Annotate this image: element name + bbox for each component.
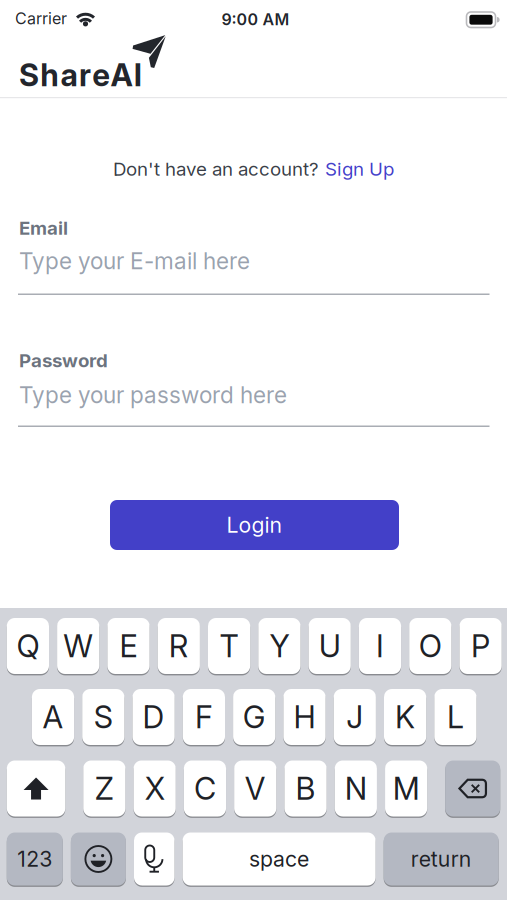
staticText: P bbox=[471, 628, 490, 664]
staticText: C bbox=[194, 770, 216, 807]
staticText: T bbox=[220, 628, 239, 664]
button[interactable]: Sign Up bbox=[325, 158, 394, 180]
button[interactable]: I bbox=[359, 618, 401, 674]
staticText: F bbox=[195, 699, 213, 735]
button[interactable]: A bbox=[32, 689, 74, 745]
staticText: D bbox=[143, 699, 165, 735]
button[interactable]: Dictate bbox=[134, 832, 174, 885]
staticText: B bbox=[296, 770, 316, 807]
staticText: O bbox=[419, 628, 442, 664]
button[interactable]: Q bbox=[7, 618, 49, 674]
button[interactable]: Z bbox=[83, 760, 125, 816]
staticText: Type your password here bbox=[19, 382, 287, 408]
button[interactable]: B bbox=[284, 760, 327, 816]
staticText: L bbox=[447, 699, 464, 735]
button[interactable]: L bbox=[434, 689, 476, 745]
staticText: Login bbox=[226, 512, 282, 538]
staticText: E bbox=[119, 628, 137, 664]
staticText: H bbox=[293, 699, 315, 735]
button[interactable]: J bbox=[334, 689, 376, 745]
button[interactable]: W bbox=[57, 618, 99, 674]
staticText: M bbox=[393, 770, 420, 807]
staticText: 123 bbox=[17, 846, 52, 872]
button[interactable]: D bbox=[132, 689, 175, 745]
button[interactable]: Type your password here bbox=[19, 374, 490, 416]
button[interactable]: H bbox=[283, 689, 326, 745]
staticText: R bbox=[169, 628, 189, 664]
button[interactable]: U bbox=[309, 618, 351, 674]
staticText: space bbox=[249, 846, 309, 872]
staticText: W bbox=[63, 628, 93, 664]
staticText: Q bbox=[16, 628, 39, 664]
staticText: 9:00 AM bbox=[221, 10, 289, 29]
staticText: Carrier bbox=[15, 9, 67, 28]
staticText: ShareAI bbox=[19, 57, 142, 93]
button[interactable]: Y bbox=[258, 618, 300, 674]
staticText: Password bbox=[19, 349, 108, 371]
button[interactable]: O bbox=[409, 618, 451, 674]
button[interactable]: Numbers bbox=[7, 832, 63, 885]
button[interactable]: P bbox=[459, 618, 502, 674]
staticText: U bbox=[319, 628, 341, 664]
button[interactable]: F bbox=[183, 689, 225, 745]
staticText: return bbox=[411, 846, 472, 872]
button[interactable]: Login bbox=[110, 500, 399, 550]
staticText: Type your E-mail here bbox=[19, 248, 250, 274]
button[interactable]: Emoji bbox=[71, 832, 126, 885]
staticText: K bbox=[395, 699, 415, 735]
button[interactable]: C bbox=[184, 760, 226, 816]
button[interactable]: K bbox=[384, 689, 426, 745]
staticText: Z bbox=[95, 770, 114, 807]
button[interactable]: N bbox=[335, 760, 377, 816]
staticText: G bbox=[243, 699, 266, 735]
staticText: Don't have an account? bbox=[113, 158, 319, 180]
staticText: N bbox=[345, 770, 367, 807]
staticText: I bbox=[376, 628, 384, 664]
button[interactable]: E bbox=[107, 618, 150, 674]
staticText: Y bbox=[269, 628, 289, 664]
staticText: V bbox=[245, 770, 266, 807]
button[interactable]: R bbox=[158, 618, 200, 674]
button[interactable]: X bbox=[133, 760, 176, 816]
button[interactable]: space bbox=[183, 832, 376, 885]
button[interactable]: M bbox=[385, 760, 427, 816]
button[interactable]: Shift bbox=[7, 760, 65, 816]
button[interactable]: return bbox=[384, 832, 499, 885]
button[interactable]: Type your E-mail here bbox=[19, 240, 490, 282]
button[interactable]: G bbox=[233, 689, 275, 745]
button[interactable]: S bbox=[82, 689, 124, 745]
staticText: X bbox=[145, 770, 165, 807]
button[interactable]: Delete bbox=[445, 760, 500, 816]
staticText: S bbox=[94, 699, 113, 735]
button[interactable]: V bbox=[234, 760, 276, 816]
button[interactable]: T bbox=[208, 618, 250, 674]
staticText: A bbox=[42, 699, 63, 735]
staticText: J bbox=[346, 699, 363, 735]
staticText: Email bbox=[19, 217, 68, 239]
staticText: Sign Up bbox=[325, 158, 394, 180]
